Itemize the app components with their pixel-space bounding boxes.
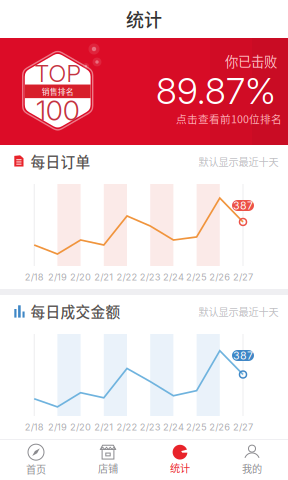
button[interactable]: 每日成交金额 <box>0 295 288 328</box>
staticText: 每日成交金额 <box>30 300 120 322</box>
staticText: 默认显示最近十天 <box>198 154 278 169</box>
staticText: 2/23 <box>140 421 161 433</box>
staticText: 我的 <box>242 461 262 476</box>
staticText: 2/24 <box>163 421 184 433</box>
staticText: 89.87% <box>156 69 276 113</box>
button[interactable]: 店铺 <box>72 440 144 480</box>
staticText: 2/21 <box>94 271 113 283</box>
staticText: 首页 <box>26 462 46 476</box>
staticText: 2/22 <box>116 271 137 283</box>
staticText: 2/22 <box>116 421 137 433</box>
staticText: 2/21 <box>94 421 113 433</box>
button[interactable]: 首页 <box>0 440 72 480</box>
button[interactable]: TOP <box>0 38 288 145</box>
staticText: 2/27 <box>233 271 253 283</box>
staticText: 默认显示最近十天 <box>198 304 278 319</box>
button[interactable]: 我的 <box>216 440 288 480</box>
staticText: 2/20 <box>70 271 91 283</box>
staticText: 2/19 <box>48 421 67 433</box>
button[interactable]: 统计 <box>144 440 216 480</box>
staticText: 2/24 <box>163 271 184 283</box>
staticText: 每日订单 <box>30 150 90 172</box>
staticText: 2/25 <box>186 271 207 283</box>
staticText: 2/20 <box>70 421 91 433</box>
staticText: 2/19 <box>48 271 67 283</box>
staticText: 2/18 <box>25 421 44 433</box>
staticText: 387 <box>233 349 253 362</box>
staticText: 你已击败 <box>225 51 277 71</box>
staticText: 统计 <box>126 6 162 32</box>
button[interactable]: 每日订单 <box>0 145 288 178</box>
staticText: 2/26 <box>209 271 230 283</box>
staticText: 点击查看前100位排名 <box>176 111 282 126</box>
staticText: 统计 <box>170 461 190 475</box>
staticText: 2/25 <box>186 421 207 433</box>
staticText: 2/23 <box>140 271 161 283</box>
staticText: 店铺 <box>98 461 118 475</box>
staticText: 387 <box>233 199 253 212</box>
staticText: TOP <box>34 59 81 88</box>
staticText: 2/27 <box>233 421 253 433</box>
staticText: 销售排名 <box>42 86 74 97</box>
staticText: 2/18 <box>25 271 44 283</box>
staticText: 100 <box>36 93 80 127</box>
staticText: 2/26 <box>209 421 230 433</box>
